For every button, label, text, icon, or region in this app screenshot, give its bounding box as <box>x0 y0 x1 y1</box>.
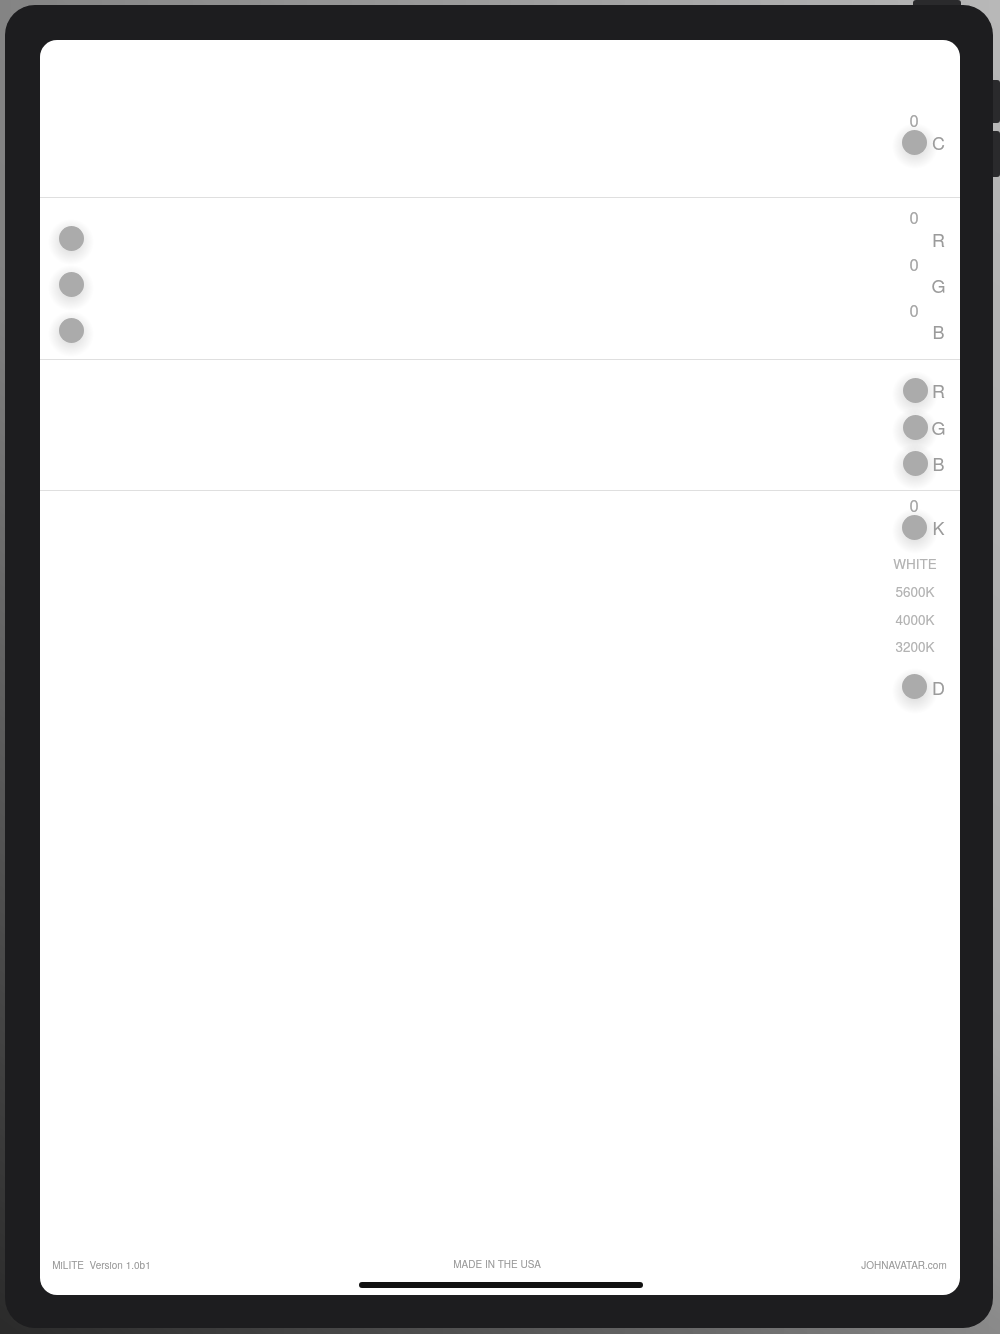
staticText: JOHNAVATAR.com <box>861 1258 947 1272</box>
staticText: G <box>931 272 946 298</box>
staticText: 5600K <box>895 582 935 601</box>
staticText: C <box>932 129 945 155</box>
button[interactable] <box>59 272 84 297</box>
staticText: B <box>932 318 945 344</box>
staticText: 0 <box>909 252 919 276</box>
button[interactable]: WHITE <box>845 548 960 578</box>
staticText: R <box>932 377 945 403</box>
button[interactable] <box>903 451 928 476</box>
button[interactable]: 5600K <box>845 576 960 606</box>
button[interactable] <box>359 1282 643 1288</box>
button[interactable] <box>903 415 928 440</box>
staticText: D <box>932 674 945 700</box>
button[interactable] <box>59 318 84 343</box>
staticText: G <box>931 414 946 440</box>
button[interactable] <box>902 515 927 540</box>
button[interactable] <box>903 378 928 403</box>
staticText: 0 <box>909 493 919 517</box>
staticText: B <box>932 450 945 476</box>
staticText: 0 <box>909 108 919 132</box>
staticText: 3200K <box>895 637 935 656</box>
button[interactable] <box>902 130 927 155</box>
staticText: MADE IN THE USA <box>453 1257 541 1271</box>
staticText: 0 <box>909 298 919 322</box>
staticText: 4000K <box>895 610 935 629</box>
staticText: WHITE <box>893 554 937 573</box>
button[interactable] <box>902 674 927 699</box>
button[interactable]: 3200K <box>845 631 960 661</box>
staticText: K <box>932 514 945 540</box>
button[interactable]: 4000K <box>845 604 960 634</box>
staticText: R <box>932 226 945 252</box>
staticText: 0 <box>909 205 919 229</box>
staticText: MiLITE Version 1.0b1 <box>52 1258 151 1272</box>
button[interactable] <box>59 226 84 251</box>
